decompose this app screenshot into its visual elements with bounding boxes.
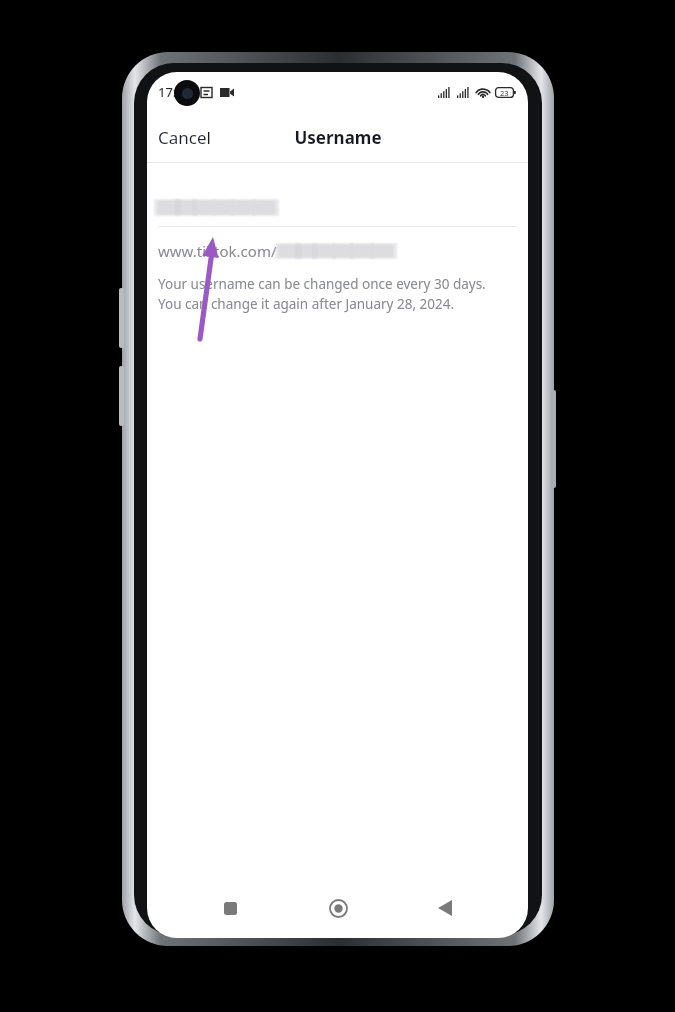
button[interactable]: Cancel <box>147 118 222 157</box>
button[interactable]: Recent apps <box>206 884 254 932</box>
button[interactable] <box>147 197 528 227</box>
staticText: 23 <box>500 88 509 98</box>
button[interactable]: Back <box>421 884 469 932</box>
button[interactable]: Home <box>314 884 362 932</box>
staticText: Cancel <box>158 126 211 149</box>
staticText: You can change it again after January 28… <box>158 295 455 313</box>
staticText: Username <box>294 126 382 149</box>
staticText: www.tiktok.com/ <box>158 241 277 261</box>
staticText: 17:00 <box>158 83 192 101</box>
staticText: Your username can be changed once every … <box>158 275 486 293</box>
